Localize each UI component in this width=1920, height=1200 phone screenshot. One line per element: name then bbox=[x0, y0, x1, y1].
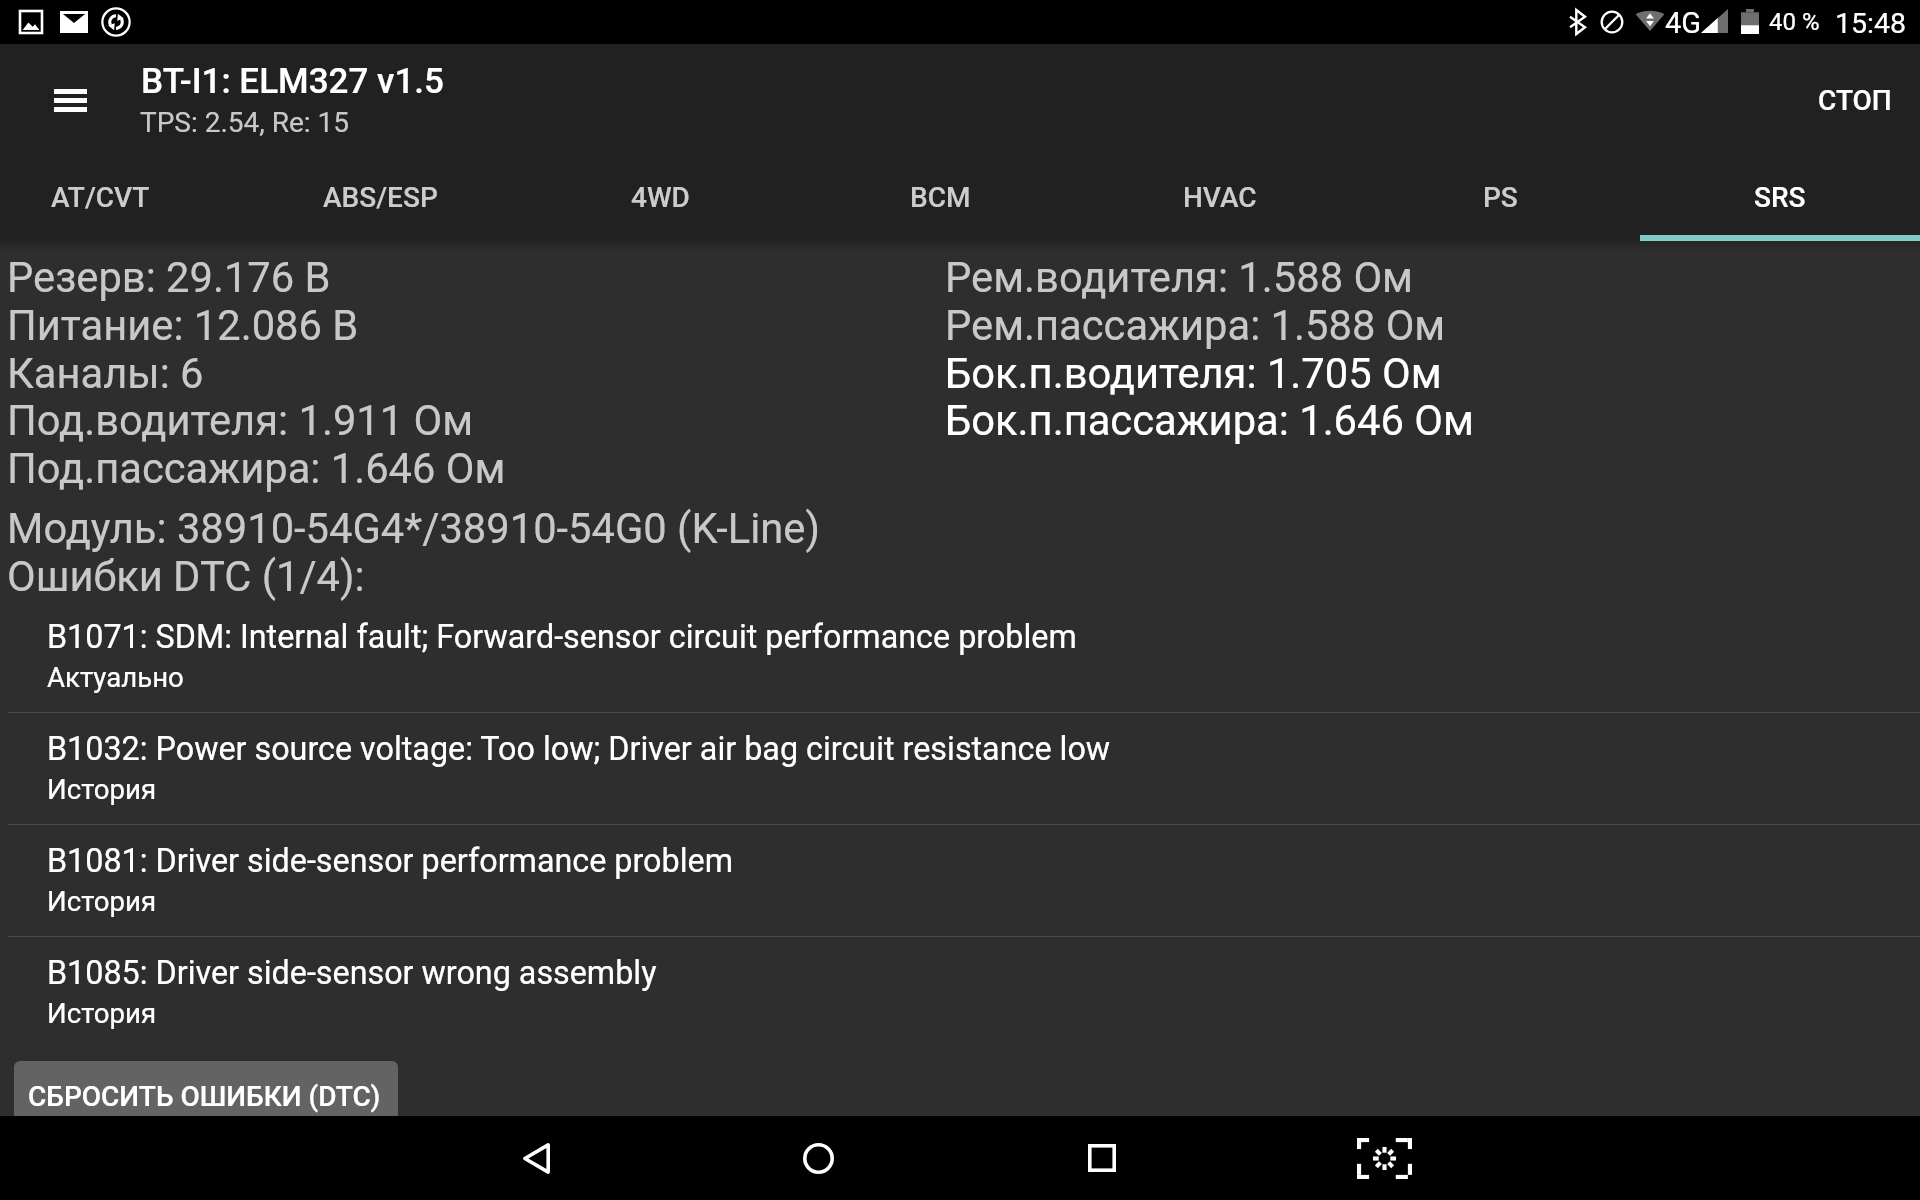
staticText: TPS: 2.54, Re: 15 bbox=[140, 106, 350, 139]
button[interactable]: BCM bbox=[800, 160, 1080, 241]
button[interactable]: Home bbox=[677, 1116, 960, 1200]
staticText: СТОП bbox=[1818, 84, 1892, 117]
staticText: Рем.водителя: 1.588 Ом bbox=[945, 253, 1414, 302]
staticText: B1081: Driver side-sensor performance pr… bbox=[47, 842, 733, 880]
button[interactable]: B1032: Power source voltage: Too low; Dr… bbox=[0, 713, 1920, 825]
button[interactable]: B1071: SDM: Internal fault; Forward-sens… bbox=[0, 601, 1920, 713]
staticText: СБРОСИТЬ ОШИБКИ (DTC) bbox=[28, 1080, 381, 1113]
staticText: Под.водителя: 1.911 Ом bbox=[7, 396, 474, 445]
staticText: BT-I1: ELM327 v1.5 bbox=[141, 61, 444, 102]
button[interactable]: Recent apps bbox=[960, 1116, 1243, 1200]
staticText: История bbox=[47, 997, 157, 1029]
staticText: B1085: Driver side-sensor wrong assembly bbox=[47, 954, 657, 992]
staticText: ABS/ESP bbox=[323, 181, 438, 214]
button[interactable]: СБРОСИТЬ ОШИБКИ (DTC) bbox=[14, 1061, 398, 1136]
staticText: B1032: Power source voltage: Too low; Dr… bbox=[47, 730, 1111, 768]
staticText: BCM bbox=[910, 181, 971, 214]
staticText: 15:48 bbox=[1835, 7, 1906, 40]
staticText: Резерв: 29.176 В bbox=[7, 253, 331, 302]
button[interactable]: SRS bbox=[1640, 160, 1920, 241]
staticText: 4G bbox=[1665, 6, 1702, 40]
staticText: История bbox=[47, 773, 157, 805]
button[interactable]: ABS/ESP bbox=[240, 160, 520, 241]
staticText: Рем.пассажира: 1.588 Ом bbox=[945, 301, 1446, 350]
staticText: Каналы: 6 bbox=[7, 349, 204, 398]
button[interactable]: Open navigation menu bbox=[26, 56, 114, 144]
staticText: История bbox=[47, 885, 157, 917]
staticText: AT/CVT bbox=[51, 181, 150, 214]
staticText: PS bbox=[1483, 181, 1518, 214]
button[interactable]: B1085: Driver side-sensor wrong assembly bbox=[0, 937, 1920, 1049]
staticText: Актуально bbox=[47, 661, 184, 693]
staticText: 40 % bbox=[1769, 8, 1820, 36]
staticText: B1071: SDM: Internal fault; Forward-sens… bbox=[47, 618, 1077, 656]
staticText: SRS bbox=[1754, 181, 1806, 214]
staticText: Ошибки DTC (1/4): bbox=[7, 552, 365, 601]
button[interactable]: AT/CVT bbox=[0, 160, 240, 241]
button[interactable]: 4WD bbox=[520, 160, 800, 241]
staticText: Под.пассажира: 1.646 Ом bbox=[7, 444, 506, 493]
button[interactable]: PS bbox=[1360, 160, 1640, 241]
button[interactable]: Take screenshot bbox=[1243, 1116, 1526, 1200]
staticText: Бок.п.пассажира: 1.646 Ом bbox=[945, 396, 1474, 445]
button[interactable]: Back bbox=[394, 1116, 677, 1200]
staticText: HVAC bbox=[1183, 181, 1257, 214]
staticText: Модуль: 38910-54G4*/38910-54G0 (K-Line) bbox=[7, 504, 820, 553]
staticText: Бок.п.водителя: 1.705 Ом bbox=[945, 349, 1442, 398]
staticText: 4WD bbox=[631, 181, 690, 214]
button[interactable]: B1081: Driver side-sensor performance pr… bbox=[0, 825, 1920, 937]
button[interactable]: СТОП bbox=[1786, 64, 1920, 141]
staticText: Питание: 12.086 В bbox=[7, 301, 359, 350]
button[interactable]: HVAC bbox=[1080, 160, 1360, 241]
